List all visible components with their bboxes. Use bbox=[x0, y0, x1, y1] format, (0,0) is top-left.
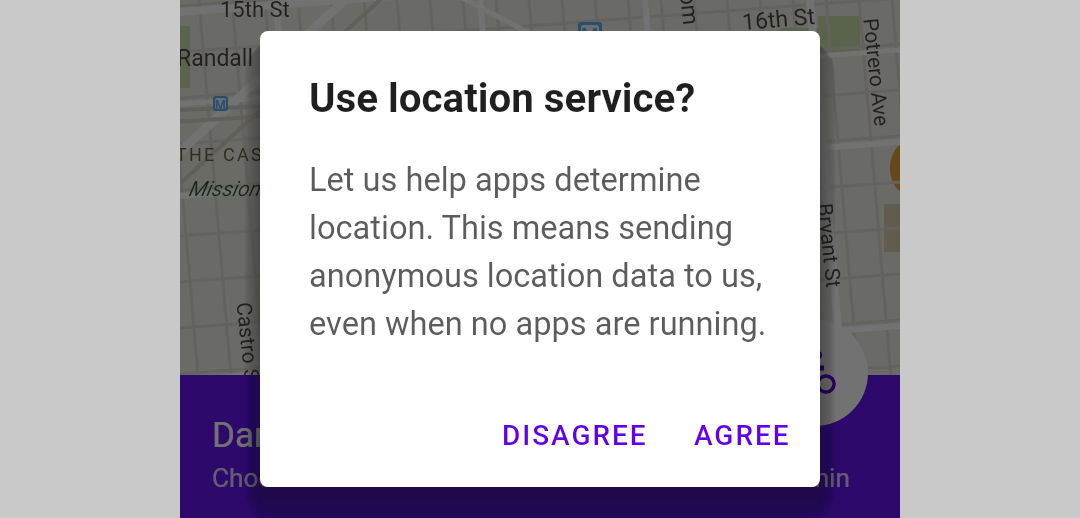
staticText: om bbox=[674, 0, 704, 27]
staticText: THE CASTRO bbox=[180, 144, 305, 165]
staticText: 16th St bbox=[741, 3, 816, 36]
staticText: M bbox=[215, 98, 226, 109]
button[interactable]: AGREE bbox=[671, 407, 814, 464]
staticText: AGREE bbox=[694, 419, 791, 452]
staticText: Mission bbox=[188, 177, 260, 202]
staticText: Bryant St bbox=[812, 202, 845, 289]
staticText: Castro St bbox=[230, 301, 264, 390]
staticText: Choose a dark theme that can be set at a… bbox=[212, 463, 850, 494]
staticText: Let us help apps determine location. Thi… bbox=[309, 161, 794, 343]
staticText: Randall M bbox=[180, 45, 279, 72]
button[interactable]: DISAGREE bbox=[479, 407, 671, 464]
button[interactable]: My location bbox=[762, 320, 868, 426]
staticText: DISAGREE bbox=[502, 419, 648, 452]
staticText: 15th St bbox=[220, 0, 290, 23]
staticText: Potrero Ave bbox=[857, 17, 894, 128]
staticText: Dark theme bbox=[212, 415, 391, 456]
button[interactable]: Dark theme bbox=[180, 375, 900, 518]
staticText: Use location service? bbox=[309, 75, 696, 122]
staticText: M bbox=[581, 25, 599, 43]
